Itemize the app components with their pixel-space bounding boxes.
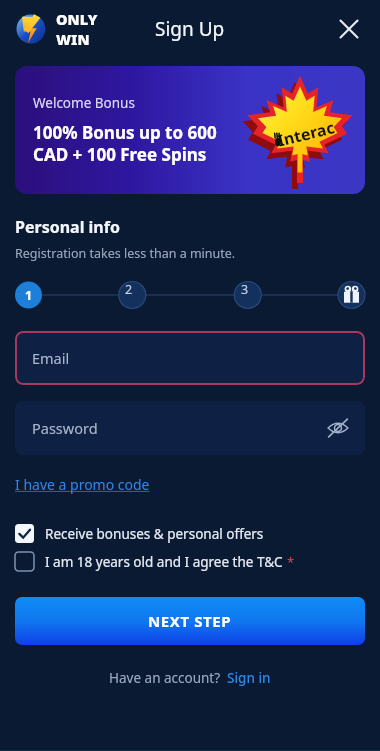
button[interactable]: OnlyWin home <box>14 9 98 49</box>
staticText: I have a promo code <box>15 475 150 494</box>
button[interactable]: Password <box>15 401 365 455</box>
button[interactable]: Welcome Bonus <box>15 66 365 194</box>
button[interactable]: Receive bonuses & personal offers <box>15 524 365 543</box>
button[interactable]: Email <box>15 331 365 385</box>
staticText: ONLY <box>56 9 98 29</box>
other: Interac <box>239 69 361 191</box>
staticText: Sign in <box>227 669 271 687</box>
button[interactable]: NEXT STEP <box>15 597 365 645</box>
staticText: Registration takes less than a minute. <box>15 245 236 262</box>
staticText: Welcome Bonus <box>33 94 135 112</box>
staticText: NEXT STEP <box>148 611 232 631</box>
staticText: 100% Bonus up to 600 CAD + 100 Free Spin… <box>33 121 235 166</box>
button[interactable]: Show password <box>325 415 351 441</box>
staticText: Password <box>32 418 98 438</box>
button[interactable]: I have a promo code <box>15 475 150 494</box>
button[interactable]: I am 18 years old and I agree the T&C <box>15 552 365 571</box>
staticText: Sign Up <box>155 16 225 42</box>
staticText: Have an account? <box>109 669 221 687</box>
staticText: 1 <box>25 287 33 304</box>
staticText: Email <box>32 348 70 368</box>
button[interactable]: Close <box>332 12 366 46</box>
staticText: Receive bonuses & personal offers <box>45 525 264 543</box>
staticText: I am 18 years old and I agree the T&C <box>45 553 283 571</box>
staticText: Interac <box>275 116 337 152</box>
staticText: Personal info <box>15 216 120 238</box>
button[interactable]: Sign in <box>227 669 271 687</box>
staticText: WIN <box>56 29 90 49</box>
staticText: * <box>287 553 295 571</box>
